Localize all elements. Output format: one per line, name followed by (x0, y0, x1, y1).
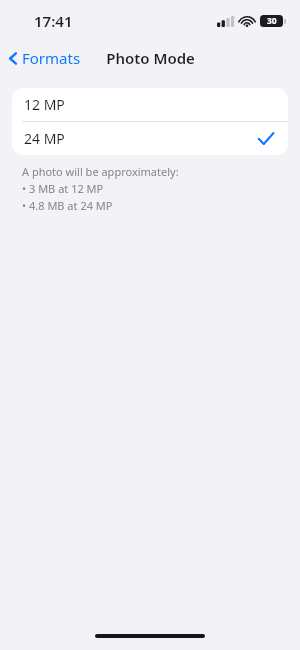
button[interactable]: 24 MP (12, 122, 288, 155)
staticText: 17:41 (34, 11, 73, 31)
other: Selected (258, 132, 274, 145)
staticText: 12 MP (24, 95, 65, 114)
staticText: 30 (267, 15, 277, 27)
staticText: • 3 MB at 12 MP (22, 181, 104, 196)
button[interactable]: 12 MP (12, 88, 288, 121)
staticText: • 4.8 MB at 24 MP (22, 198, 113, 213)
staticText: Formats (22, 48, 81, 68)
staticText: A photo will be approximately: (22, 164, 179, 179)
button[interactable]: Formats (0, 44, 91, 72)
staticText: Photo Mode (106, 48, 195, 68)
staticText: 24 MP (24, 129, 65, 148)
